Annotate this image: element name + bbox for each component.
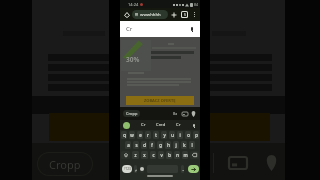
staticText: Cr — [126, 25, 133, 33]
staticText: Cr — [176, 122, 181, 128]
button[interactable]: o — [185, 131, 191, 139]
staticText: i — [179, 132, 181, 138]
staticText: 14:24 — [128, 2, 139, 7]
button[interactable]: Home — [122, 10, 132, 20]
staticText: q — [123, 132, 126, 138]
button[interactable]: h — [165, 141, 171, 149]
staticText: e — [139, 132, 142, 138]
button[interactable]: j — [173, 141, 179, 149]
staticText: Ba — [173, 111, 178, 116]
staticText: 5 — [184, 13, 186, 17]
staticText: a — [127, 142, 130, 148]
staticText: p — [195, 132, 198, 138]
button[interactable]: Location — [189, 109, 198, 118]
button[interactable]: t — [153, 131, 159, 139]
button[interactable]: wwwhhhh — [132, 10, 168, 19]
button[interactable]: w — [129, 131, 135, 139]
button[interactable]: More options — [190, 10, 199, 19]
staticText: w — [130, 132, 134, 138]
button[interactable]: x — [141, 151, 148, 159]
button[interactable]: u — [169, 131, 175, 139]
button[interactable]: l — [189, 141, 195, 149]
button[interactable]: Voice search — [186, 23, 198, 35]
button[interactable]: Payment card — [180, 109, 189, 118]
staticText: Cr — [141, 122, 146, 128]
staticText: k — [183, 142, 186, 148]
button[interactable]: n — [174, 151, 180, 159]
staticText: g — [159, 142, 162, 148]
button[interactable]: e — [137, 131, 143, 139]
staticText: h — [167, 142, 170, 148]
staticText: t — [155, 132, 157, 138]
button[interactable]: Google Search — [123, 122, 130, 129]
button[interactable]: y — [161, 131, 167, 139]
staticText: z — [134, 152, 137, 158]
button[interactable]: Product photo — [121, 40, 151, 71]
staticText: x — [143, 152, 146, 158]
button[interactable]: q — [121, 131, 127, 139]
button[interactable]: Cropp — [123, 110, 140, 117]
button[interactable]: i — [177, 131, 183, 139]
button[interactable]: m — [182, 151, 188, 159]
staticText: v — [160, 152, 163, 158]
button[interactable]: , — [134, 165, 137, 173]
button[interactable]: g — [157, 141, 163, 149]
staticText: Cropp — [126, 111, 138, 116]
button[interactable]: a — [125, 141, 131, 149]
staticText: , — [135, 166, 137, 172]
staticText: wwwhhhh — [140, 12, 161, 18]
button[interactable]: New tab — [168, 9, 179, 20]
button[interactable]: ZOBACZ OFERTĘ — [126, 96, 194, 105]
button[interactable]: k — [181, 141, 187, 149]
staticText: Cred — [156, 122, 166, 128]
staticText: l — [191, 142, 193, 148]
staticText: b — [168, 152, 171, 158]
staticText: j — [175, 142, 177, 148]
staticText: m — [183, 152, 188, 158]
button[interactable]: f — [149, 141, 155, 149]
staticText: f — [151, 142, 153, 148]
button[interactable]: d — [141, 141, 147, 149]
button[interactable]: s — [133, 141, 139, 149]
button[interactable]: Shift — [121, 151, 130, 159]
button[interactable]: Emoji — [140, 165, 144, 173]
button[interactable]: Symbols — [122, 165, 132, 173]
button[interactable]: Clipboard text — [171, 109, 180, 118]
staticText: r — [147, 132, 149, 138]
button[interactable]: r — [145, 131, 151, 139]
button[interactable]: c — [150, 151, 156, 159]
button[interactable]: b — [166, 151, 172, 159]
staticText: y — [163, 132, 166, 138]
staticText: . — [182, 166, 184, 172]
button[interactable]: Search — [188, 165, 199, 173]
staticText: s — [135, 142, 138, 148]
button[interactable]: p — [193, 131, 199, 139]
staticText: o — [187, 132, 190, 138]
staticText: u — [171, 132, 174, 138]
button[interactable]: v — [158, 151, 164, 159]
staticText: n — [176, 152, 179, 158]
button[interactable]: Backspace — [190, 151, 199, 159]
staticText: 84 — [194, 2, 198, 7]
staticText: d — [143, 142, 146, 148]
button[interactable]: Voice input — [189, 121, 198, 130]
button[interactable]: . — [181, 165, 184, 173]
button[interactable]: z — [132, 151, 139, 159]
staticText: 30% — [126, 55, 140, 64]
staticText: c — [152, 152, 155, 158]
staticText: ZOBACZ OFERTĘ — [144, 98, 176, 103]
button[interactable]: Switch tabs — [179, 9, 190, 20]
staticText: Cropp — [49, 157, 81, 172]
staticText: ?123 — [124, 167, 131, 171]
